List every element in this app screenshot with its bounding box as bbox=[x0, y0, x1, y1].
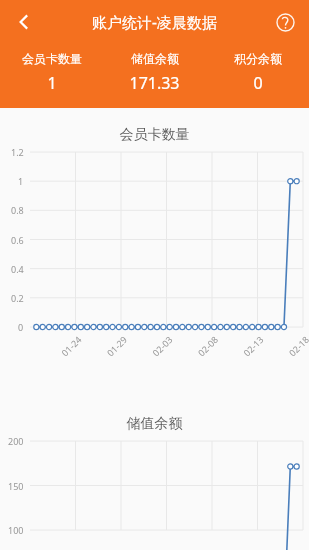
button[interactable]: 会员卡数量 bbox=[0, 51, 103, 94]
staticText: 171.33 bbox=[129, 72, 180, 94]
staticText: 0 bbox=[253, 72, 263, 94]
button[interactable]: Help bbox=[267, 4, 303, 40]
button[interactable]: Back bbox=[6, 4, 42, 40]
staticText: 1 bbox=[47, 72, 57, 94]
staticText: 储值余额 bbox=[0, 415, 309, 433]
button[interactable]: 积分余额 bbox=[206, 51, 309, 94]
staticText: 会员卡数量 bbox=[0, 126, 309, 144]
staticText: 储值余额 bbox=[131, 51, 179, 66]
staticText: 账户统计-凌晨数据 bbox=[92, 12, 217, 32]
staticText: 积分余额 bbox=[234, 51, 282, 66]
staticText: 会员卡数量 bbox=[22, 51, 82, 66]
button[interactable]: 储值余额 bbox=[103, 51, 206, 94]
